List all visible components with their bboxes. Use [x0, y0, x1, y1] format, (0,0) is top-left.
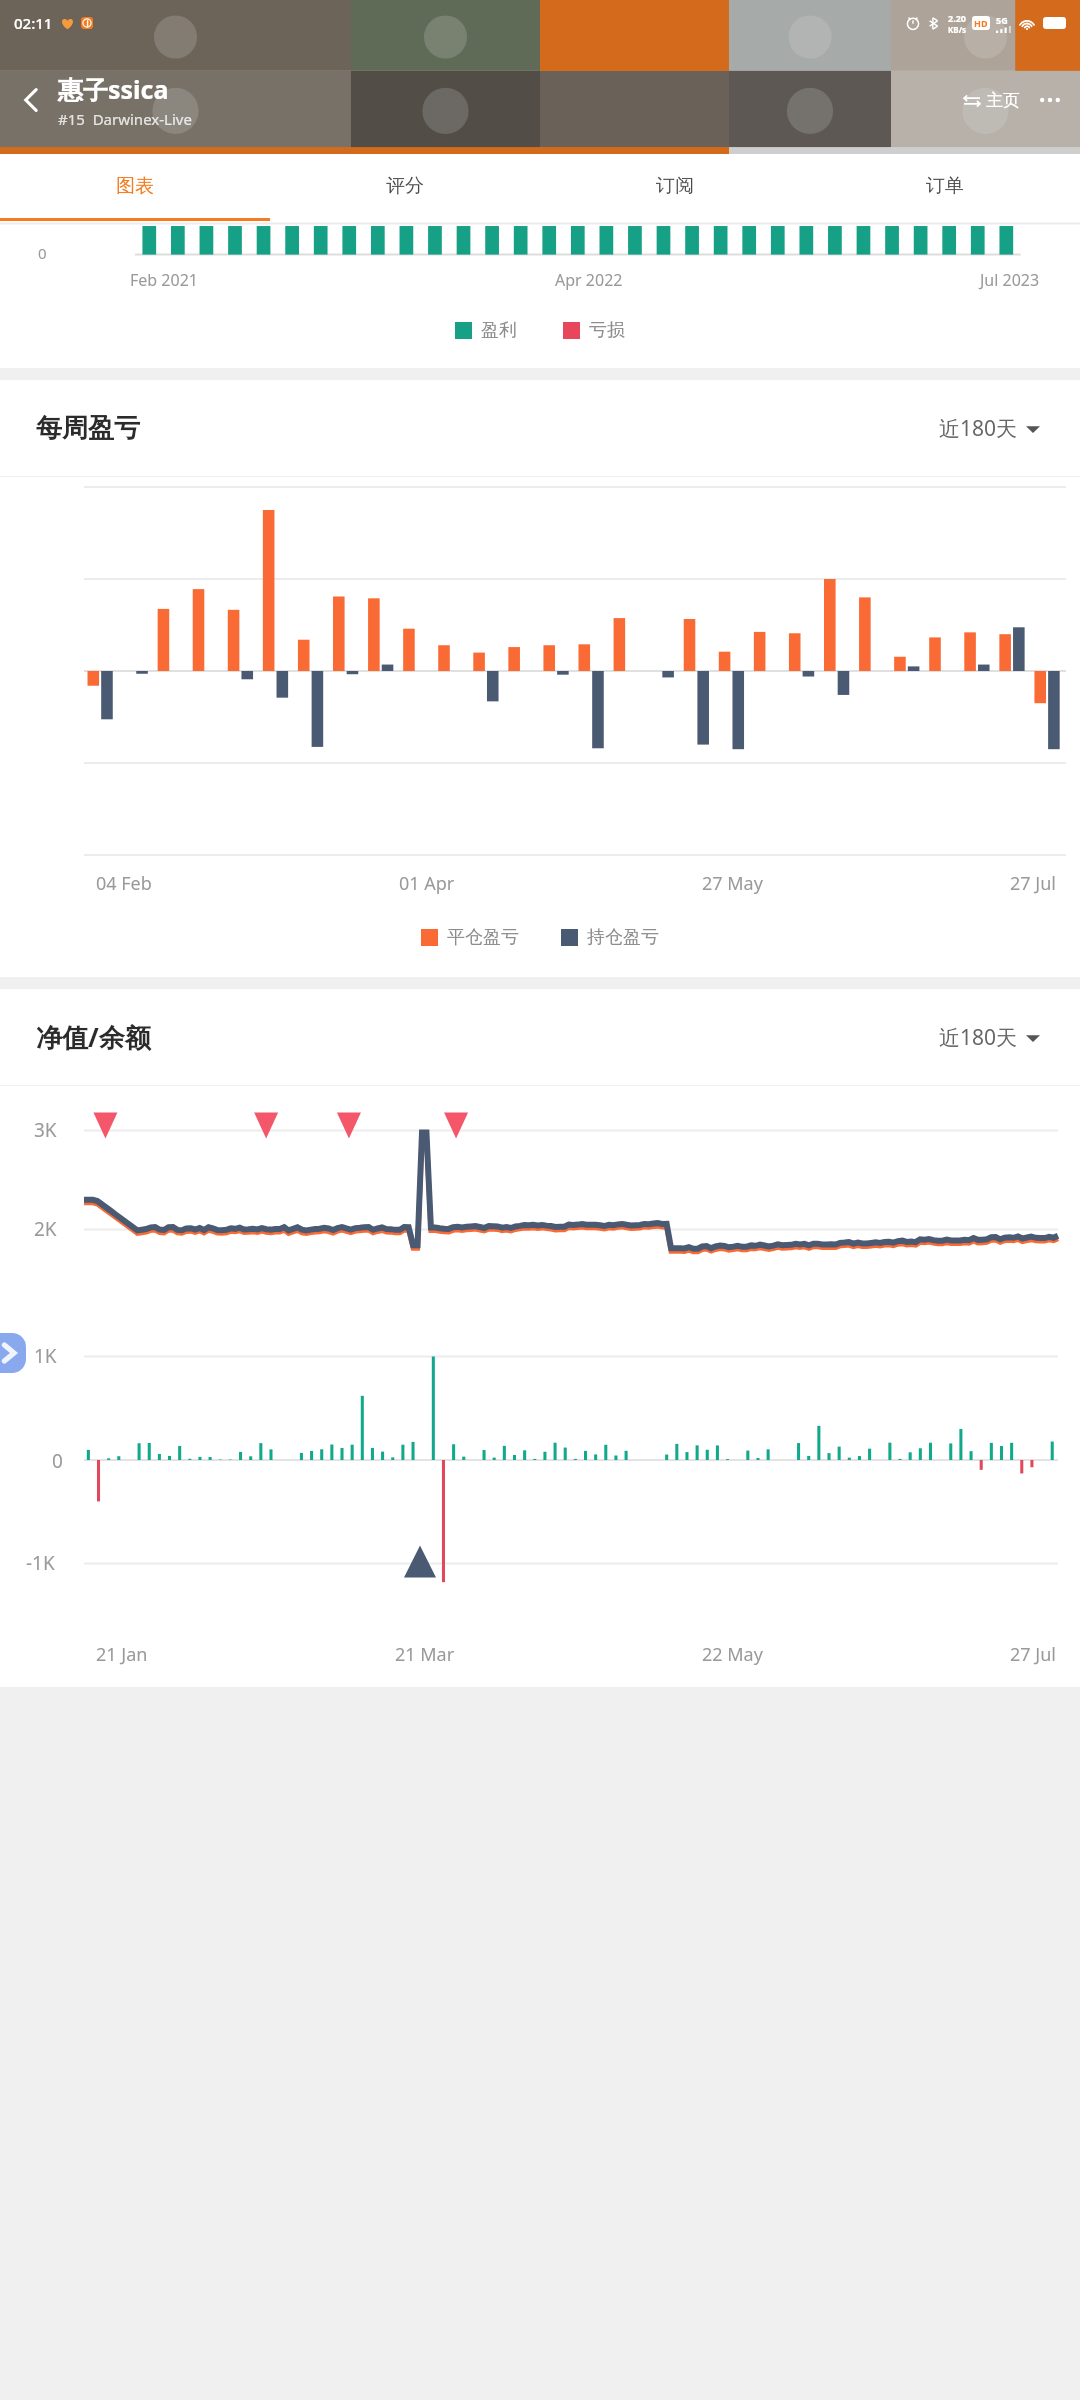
- button[interactable]: 近180天: [935, 410, 1044, 447]
- button[interactable]: 订单: [810, 154, 1080, 218]
- staticText: 21 Mar: [395, 1642, 455, 1667]
- button[interactable]: 主页: [956, 84, 1026, 117]
- button[interactable]: 近180天: [935, 1019, 1044, 1056]
- button[interactable]: More options: [1030, 80, 1070, 120]
- staticText: 盈利: [481, 319, 517, 342]
- staticText: 22 May: [702, 1642, 763, 1667]
- staticText: 27 Jul: [1010, 871, 1056, 896]
- staticText: 0: [52, 1448, 63, 1474]
- staticText: 近180天: [939, 414, 1018, 443]
- staticText: 平仓盈亏: [447, 926, 519, 949]
- button[interactable]: 订阅: [540, 154, 810, 218]
- staticText: 0: [38, 243, 47, 263]
- staticText: 持仓盈亏: [587, 926, 659, 949]
- staticText: 1K: [34, 1343, 57, 1369]
- staticText: 净值/余额: [36, 1019, 151, 1055]
- staticText: Jul 2023: [980, 269, 1040, 291]
- button[interactable]: 图表: [0, 154, 270, 218]
- button[interactable]: Back: [6, 74, 58, 126]
- staticText: 27 Jul: [1010, 1642, 1056, 1667]
- staticText: KB/s: [948, 24, 966, 35]
- staticText: -1K: [26, 1550, 55, 1576]
- staticText: 惠子ssica: [58, 72, 169, 106]
- staticText: 评分: [386, 174, 424, 198]
- staticText: 订单: [926, 174, 964, 198]
- staticText: 27 May: [702, 871, 763, 896]
- staticText: 亏损: [589, 319, 625, 342]
- staticText: 3K: [34, 1117, 57, 1143]
- staticText: 近180天: [939, 1023, 1018, 1052]
- staticText: 02:11: [14, 13, 53, 33]
- staticText: HD: [974, 17, 988, 29]
- staticText: 5G: [996, 14, 1008, 26]
- staticText: Apr 2022: [555, 269, 623, 291]
- staticText: #15 Darwinex-Live: [58, 109, 192, 129]
- staticText: 04 Feb: [96, 871, 152, 896]
- staticText: 2K: [34, 1216, 57, 1242]
- staticText: 每周盈亏: [36, 412, 140, 445]
- staticText: 订阅: [656, 174, 694, 198]
- staticText: 主页: [986, 90, 1020, 111]
- staticText: 21 Jan: [96, 1642, 148, 1667]
- button[interactable]: Expand: [0, 1333, 26, 1373]
- staticText: 图表: [116, 174, 154, 198]
- staticText: 01 Apr: [399, 871, 455, 896]
- button[interactable]: 评分: [270, 154, 540, 218]
- staticText: Feb 2021: [130, 269, 198, 291]
- staticText: 2.20: [948, 12, 966, 24]
